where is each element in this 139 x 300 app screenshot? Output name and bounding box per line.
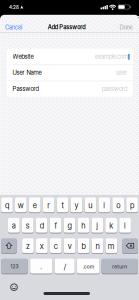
staticText: Cancel bbox=[5, 24, 22, 31]
staticText: e bbox=[33, 200, 37, 210]
button[interactable]: s bbox=[22, 218, 34, 233]
button[interactable]: u bbox=[84, 197, 96, 213]
button[interactable]: e bbox=[29, 197, 41, 213]
staticText: .com bbox=[83, 263, 94, 270]
staticText: Add bbox=[48, 24, 58, 31]
staticText: z bbox=[26, 241, 30, 251]
staticText: f bbox=[55, 221, 57, 230]
button[interactable]: .com bbox=[77, 259, 99, 274]
button[interactable]: i bbox=[98, 197, 110, 213]
button[interactable]: v bbox=[64, 238, 75, 254]
button[interactable]: g bbox=[64, 218, 75, 233]
button[interactable]: 123 bbox=[1, 259, 28, 274]
staticText: Password bbox=[13, 85, 39, 92]
staticText: c bbox=[54, 241, 58, 251]
staticText: r bbox=[47, 200, 50, 210]
staticText: q bbox=[5, 200, 9, 210]
staticText: s bbox=[26, 221, 30, 230]
staticText: t bbox=[62, 200, 64, 210]
button[interactable]: n bbox=[92, 238, 103, 254]
button[interactable]: l bbox=[119, 218, 131, 233]
staticText: u bbox=[88, 200, 92, 210]
staticText: j bbox=[96, 221, 98, 230]
button[interactable]: . bbox=[30, 259, 52, 274]
button[interactable]: / bbox=[55, 259, 75, 274]
staticText: Password bbox=[59, 24, 85, 31]
staticText: m bbox=[108, 241, 115, 251]
staticText: example.com bbox=[95, 53, 128, 60]
button[interactable]: Done bbox=[103, 22, 133, 32]
button[interactable]: q bbox=[1, 197, 13, 213]
button[interactable]: p bbox=[126, 197, 138, 213]
button[interactable]: m bbox=[105, 238, 117, 254]
button[interactable]: h bbox=[77, 218, 89, 233]
staticText: l bbox=[124, 221, 126, 230]
button[interactable]: w bbox=[15, 197, 27, 213]
staticText: x bbox=[40, 241, 44, 251]
button[interactable]: o bbox=[112, 197, 124, 213]
button[interactable]: return bbox=[102, 259, 138, 274]
staticText: k bbox=[109, 221, 113, 230]
button[interactable]: key bbox=[122, 238, 138, 254]
staticText: Done bbox=[120, 24, 133, 31]
button[interactable]: f bbox=[50, 218, 61, 233]
staticText: b bbox=[81, 241, 85, 251]
button[interactable]: t bbox=[57, 197, 68, 213]
button[interactable]: c bbox=[50, 238, 62, 254]
staticText: 123 bbox=[11, 263, 19, 269]
button[interactable]: y bbox=[71, 197, 82, 213]
staticText: o bbox=[116, 200, 120, 210]
button[interactable]: b bbox=[78, 238, 89, 254]
button[interactable]: a bbox=[8, 218, 20, 233]
button[interactable]: d bbox=[36, 218, 47, 233]
staticText: password bbox=[102, 85, 127, 92]
button[interactable]: x bbox=[36, 238, 48, 254]
staticText: h bbox=[81, 221, 85, 230]
staticText: User Name bbox=[13, 69, 42, 76]
staticText: / bbox=[64, 262, 66, 271]
staticText: y bbox=[74, 200, 78, 210]
staticText: . bbox=[40, 262, 42, 271]
staticText: v bbox=[68, 241, 72, 251]
staticText: 4:28 bbox=[9, 4, 19, 10]
staticText: g bbox=[67, 221, 71, 230]
staticText: d bbox=[40, 221, 44, 230]
button[interactable]: j bbox=[91, 218, 103, 233]
button[interactable]: key bbox=[1, 238, 17, 254]
staticText: n bbox=[95, 241, 99, 251]
button[interactable]: r bbox=[43, 197, 54, 213]
staticText: a bbox=[12, 221, 16, 230]
staticText: i bbox=[103, 200, 105, 210]
button[interactable]: k bbox=[105, 218, 117, 233]
button[interactable]: z bbox=[22, 238, 34, 254]
button[interactable]: Cancel bbox=[5, 22, 35, 32]
staticText: p bbox=[130, 200, 134, 210]
button[interactable]: Emoji keyboard bbox=[9, 283, 18, 292]
staticText: Website bbox=[13, 53, 34, 60]
staticText: w bbox=[18, 200, 24, 210]
staticText: user bbox=[116, 69, 127, 76]
staticText: return bbox=[112, 263, 127, 270]
